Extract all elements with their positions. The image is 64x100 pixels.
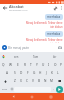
- staticText: Bir mesaj yazin: [8, 46, 55, 50]
- staticText: G: [33, 71, 36, 75]
- button[interactable]: D: [18, 69, 25, 77]
- button[interactable]: J: [43, 69, 49, 77]
- button[interactable]: T: [28, 61, 34, 69]
- staticText: C: [26, 79, 29, 83]
- button[interactable]: Emoji: [9, 85, 14, 93]
- staticText: ?123: [2, 88, 7, 91]
- button[interactable]: merhaba: [45, 14, 63, 20]
- button[interactable]: L: [55, 69, 61, 77]
- button[interactable]: More options: [59, 4, 64, 12]
- staticText: merhaba: [47, 32, 61, 36]
- staticText: Y: [36, 63, 38, 67]
- staticText: Tam: [33, 55, 39, 59]
- staticText: sen: [14, 55, 19, 59]
- button[interactable]: Backspace: [54, 77, 64, 85]
- button[interactable]: Call: [51, 4, 59, 12]
- button[interactable]: Emoji: [0, 43, 8, 52]
- button[interactable]: X: [18, 77, 24, 85]
- staticText: Q: [2, 63, 5, 67]
- staticText: icin dokun: [50, 42, 63, 43]
- button[interactable]: A: [4, 69, 11, 77]
- button[interactable]: bir: [45, 52, 64, 61]
- button[interactable]: K: [49, 69, 55, 77]
- staticText: H: [39, 71, 42, 75]
- button[interactable]: .: [51, 85, 55, 93]
- button[interactable]: W: [7, 61, 14, 69]
- staticText: S: [14, 71, 16, 75]
- staticText: I: [48, 63, 50, 67]
- staticText: J: [46, 71, 47, 75]
- button[interactable]: Mesaj iletilemedi. Tekrar dene: [2, 21, 63, 29]
- button[interactable]: merhaba: [45, 31, 63, 37]
- button[interactable]: Camera: [55, 43, 64, 52]
- staticText: M: [50, 79, 53, 83]
- staticText: bir: [53, 55, 57, 59]
- button[interactable]: Back: [9, 93, 17, 100]
- button[interactable]: C: [24, 77, 30, 85]
- button[interactable]: ?123: [0, 85, 9, 93]
- staticText: U: [42, 63, 45, 67]
- staticText: V: [32, 79, 34, 83]
- button[interactable]: Q: [0, 61, 7, 69]
- staticText: Akcabat: [9, 4, 24, 9]
- button[interactable]: E: [14, 61, 21, 69]
- button[interactable]: B: [36, 77, 42, 85]
- button[interactable]: P: [58, 61, 64, 69]
- staticText: A: [6, 71, 9, 75]
- button[interactable]: N: [42, 77, 48, 85]
- button[interactable]: F: [25, 69, 31, 77]
- staticText: Z: [14, 79, 16, 83]
- staticText: B: [38, 79, 41, 83]
- staticText: E: [17, 63, 19, 67]
- staticText: W: [9, 63, 12, 67]
- staticText: icin dokun: [50, 25, 63, 29]
- button[interactable]: Google: [0, 52, 7, 61]
- button[interactable]: Mesaj iletilemedi. Tekrar dene: [2, 38, 63, 43]
- button[interactable]: H: [37, 69, 43, 77]
- button[interactable]: O: [52, 61, 58, 69]
- button[interactable]: U: [40, 61, 46, 69]
- button[interactable]: Send: [55, 85, 64, 93]
- staticText: X: [20, 79, 22, 83]
- staticText: D: [20, 71, 23, 75]
- button[interactable]: I: [46, 61, 52, 69]
- staticText: T: [30, 63, 32, 67]
- button[interactable]: Tam: [26, 52, 45, 61]
- staticText: P: [60, 63, 62, 67]
- button[interactable]: R: [21, 61, 28, 69]
- staticText: son gorulme 12:15: [9, 9, 28, 12]
- staticText: N: [44, 79, 47, 83]
- staticText: L: [57, 71, 59, 75]
- staticText: .: [53, 87, 54, 91]
- button[interactable]: G: [31, 69, 37, 77]
- staticText: F: [27, 71, 29, 75]
- button[interactable]: M: [48, 77, 54, 85]
- staticText: O: [54, 63, 57, 67]
- staticText: R: [24, 63, 26, 67]
- button[interactable]: S: [11, 69, 18, 77]
- button[interactable]: Recents: [47, 93, 55, 100]
- button[interactable]: Back: [0, 4, 9, 12]
- button[interactable]: Shift: [0, 77, 11, 85]
- button[interactable]: V: [30, 77, 36, 85]
- button[interactable]: Y: [34, 61, 40, 69]
- staticText: Mesaj iletilemedi. Tekrar dene: [26, 38, 63, 42]
- staticText: merhaba: [47, 15, 61, 19]
- staticText: Mesaj iletilemedi. Tekrar dene: [26, 21, 63, 25]
- button[interactable]: Z: [11, 77, 18, 85]
- button[interactable]: sen: [7, 52, 26, 61]
- button[interactable]: Home: [28, 93, 36, 100]
- staticText: K: [51, 71, 53, 75]
